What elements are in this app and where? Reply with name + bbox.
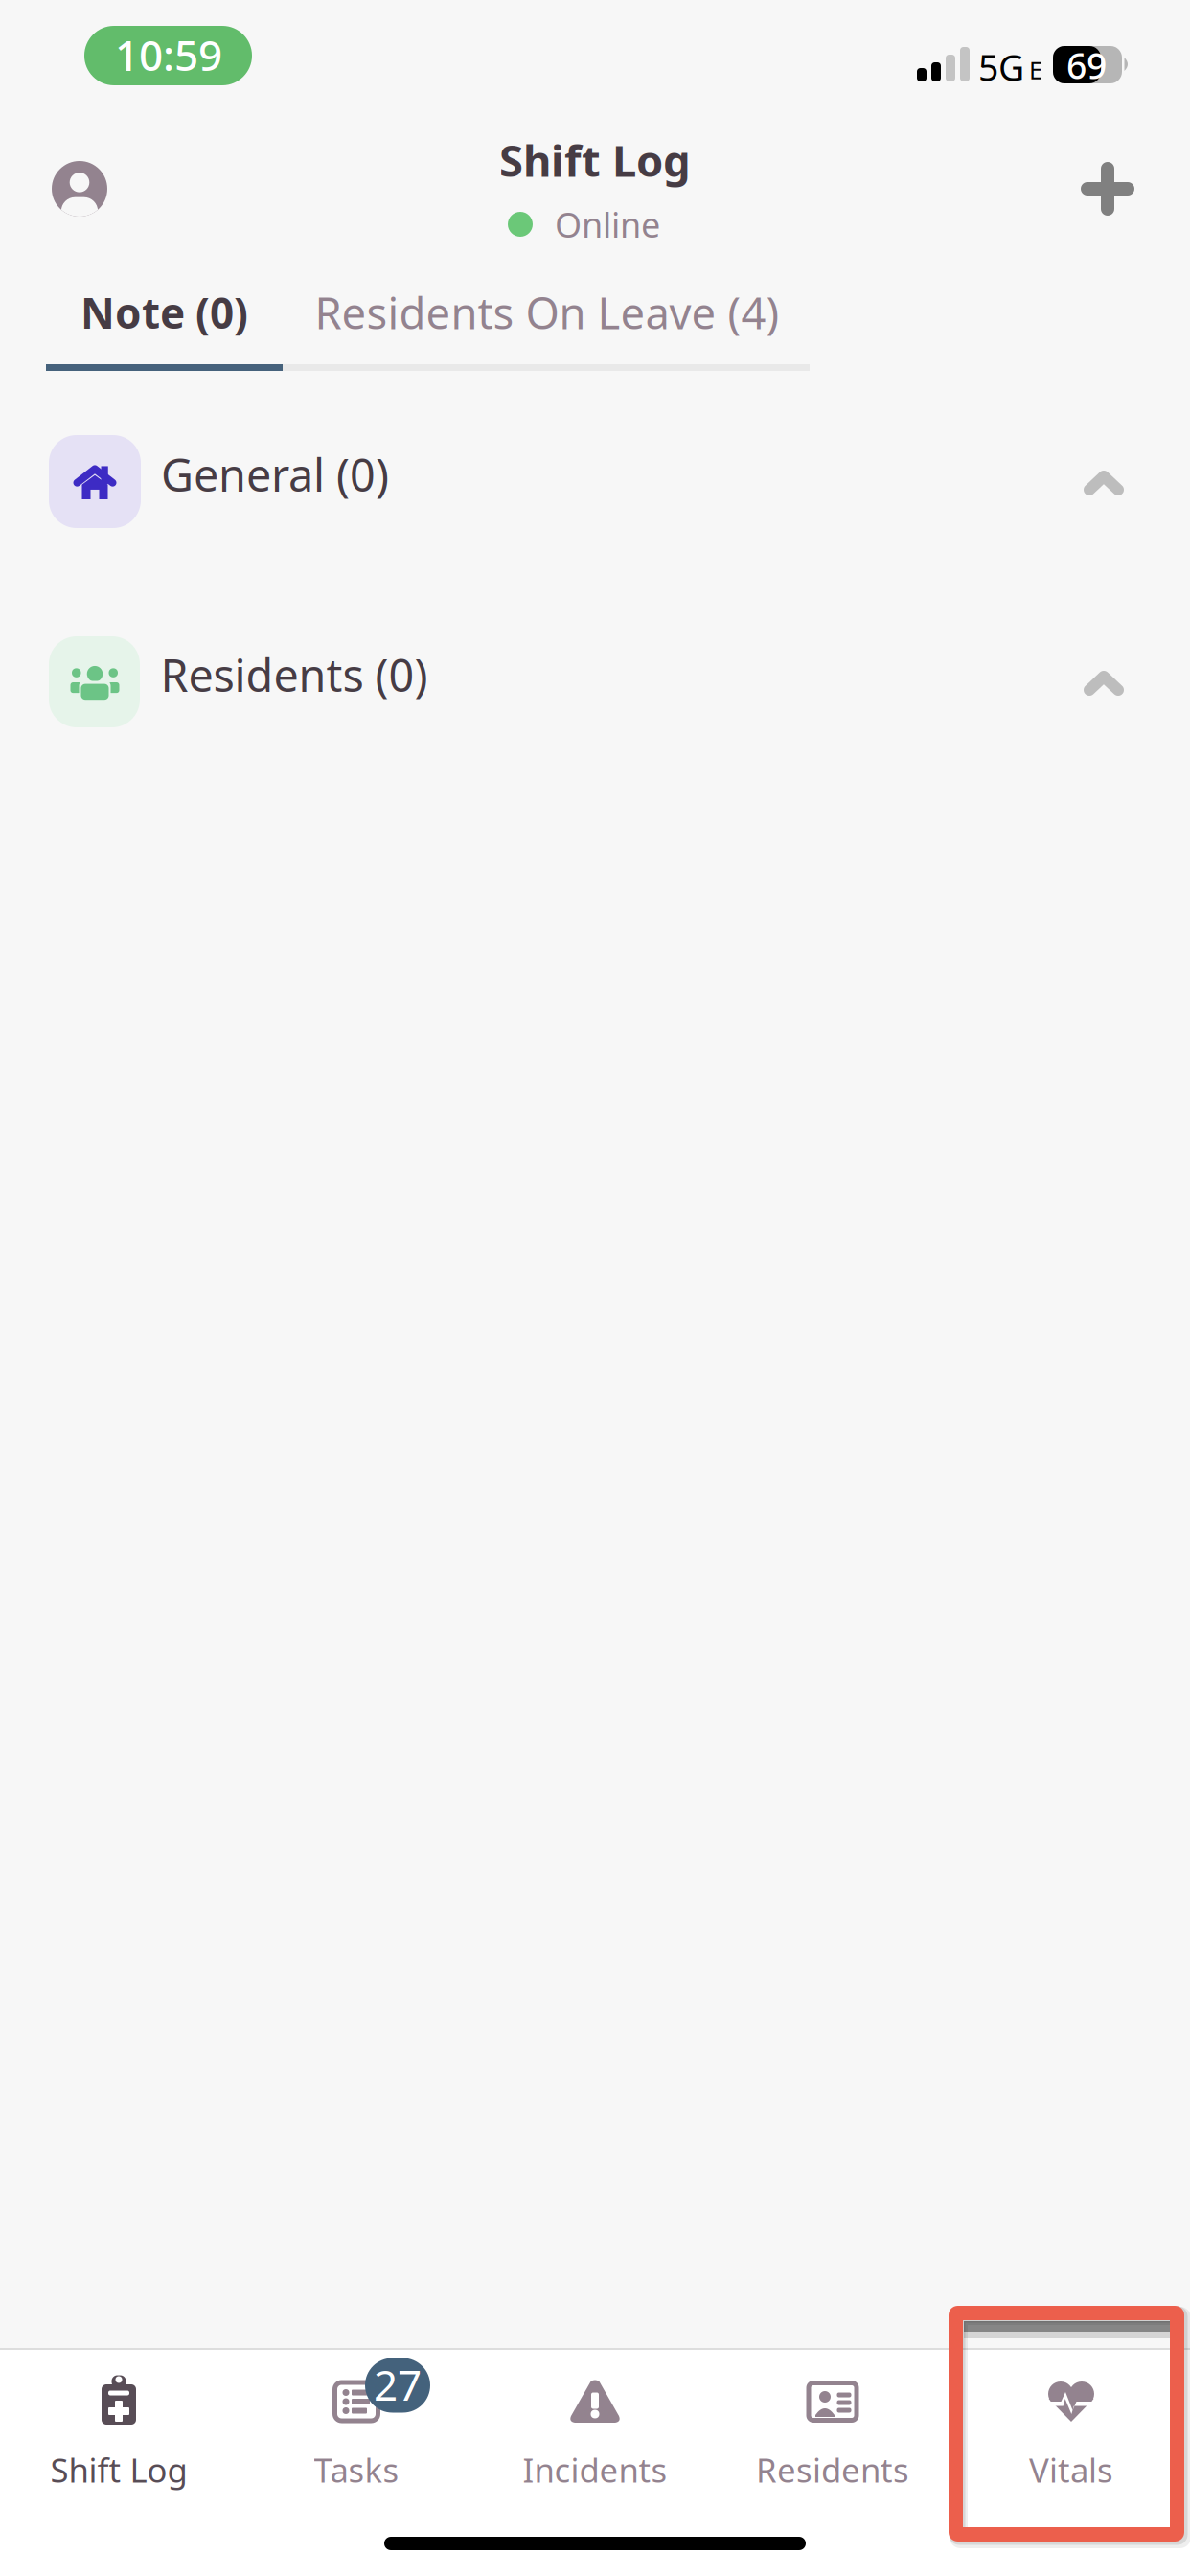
button[interactable]: Residents [714, 2350, 951, 2540]
staticText: General (0) [161, 445, 389, 504]
button[interactable]: Shift Log [0, 2350, 238, 2540]
staticText: Online [555, 201, 660, 247]
staticText: Residents On Leave (4) [315, 284, 779, 341]
staticText: Shift Log [499, 131, 691, 189]
staticText: Incidents [523, 2448, 667, 2492]
staticText: Vitals [1029, 2448, 1113, 2492]
button[interactable]: Vitals [952, 2350, 1190, 2540]
staticText: Tasks [314, 2448, 399, 2492]
button[interactable]: Profile [35, 145, 124, 233]
staticText: 5G [978, 43, 1024, 91]
staticText: 27 [374, 2356, 422, 2412]
button[interactable]: Residents (0) [0, 591, 1190, 773]
staticText: Note (0) [80, 284, 248, 340]
staticText: E [1029, 54, 1042, 86]
staticText: 10:59 [115, 27, 222, 83]
button[interactable]: General (0) [0, 391, 1190, 573]
button[interactable]: Add [1064, 145, 1152, 233]
button[interactable]: Note (0) [46, 263, 282, 364]
staticText: Residents (0) [160, 645, 428, 704]
staticText: 69 [1066, 41, 1107, 89]
staticText: Residents [756, 2448, 909, 2492]
staticText: Shift Log [50, 2448, 187, 2492]
button[interactable]: Incidents [476, 2350, 714, 2540]
button[interactable]: Residents On Leave (4) [284, 263, 811, 364]
button[interactable]: Tasks [238, 2350, 475, 2540]
